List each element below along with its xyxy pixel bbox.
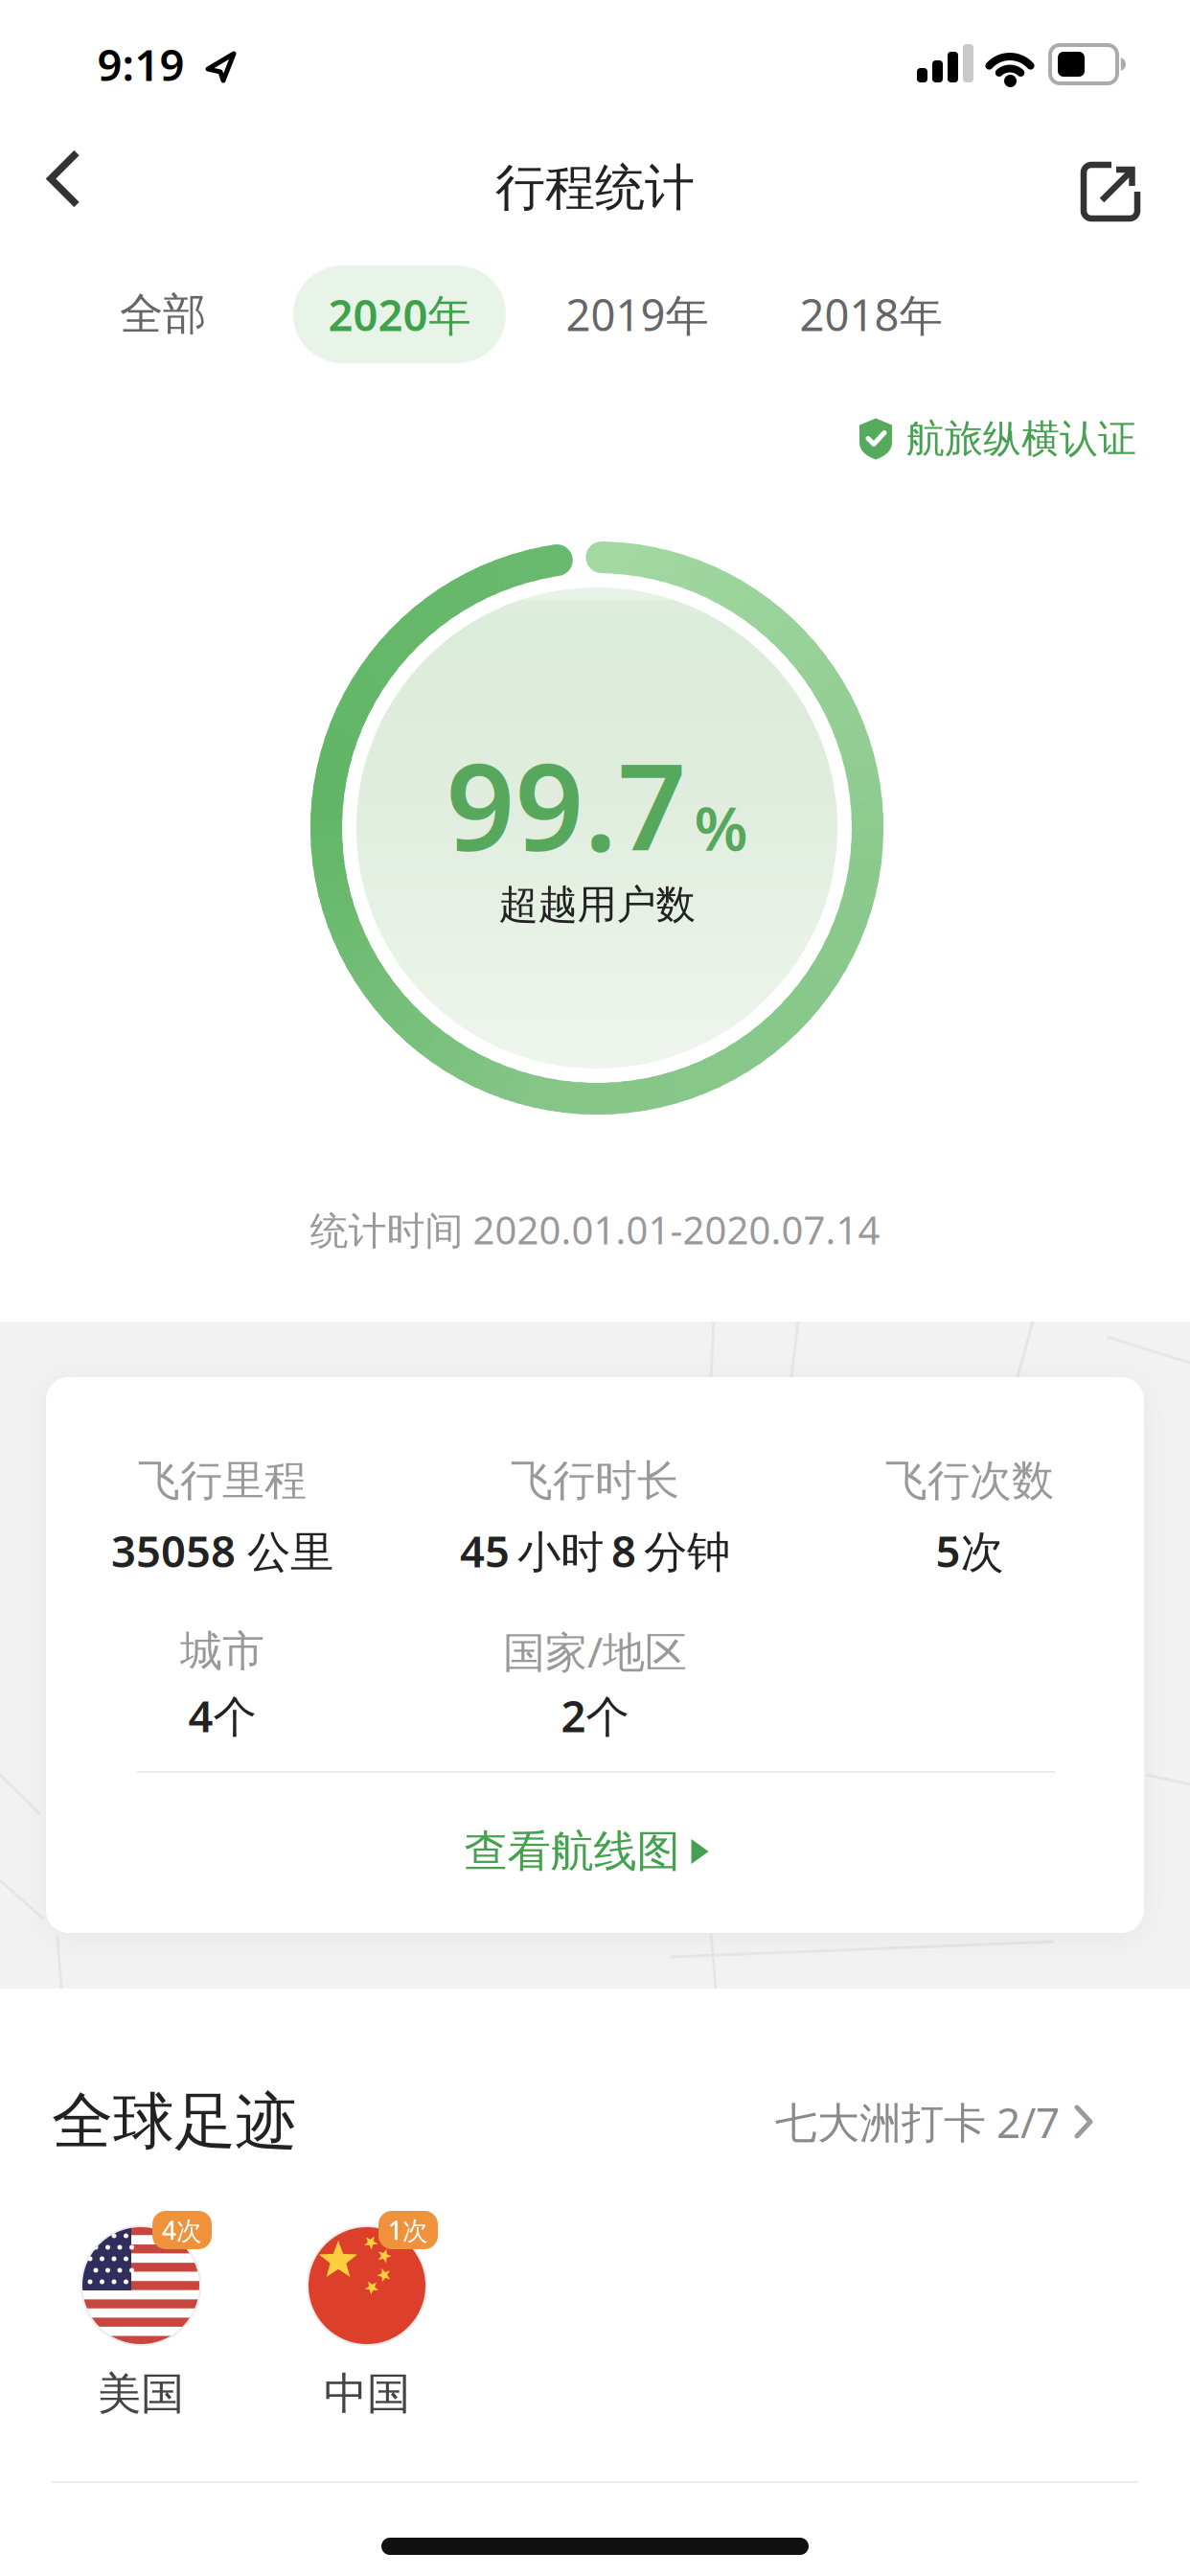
staticText: 9:19 bbox=[97, 35, 184, 93]
button[interactable]: 七大洲打卡 2/7 bbox=[500, 2083, 1094, 2160]
staticText: 查看航线图 bbox=[464, 1825, 680, 1878]
staticText: 飞行次数 bbox=[885, 1455, 1054, 1506]
staticText: 全球足迹 bbox=[52, 2084, 297, 2159]
button[interactable]: 全部 bbox=[77, 266, 249, 362]
staticText: 1次 bbox=[388, 2213, 428, 2247]
button[interactable]: 2020年 bbox=[293, 265, 506, 363]
staticText: 飞行时长 bbox=[511, 1455, 679, 1506]
staticText: 99.7 bbox=[446, 724, 687, 884]
button[interactable]: 查看航线图 bbox=[404, 1808, 768, 1895]
staticText: 统计时间 2020.01.01-2020.07.14 bbox=[310, 1204, 880, 1255]
staticText: 飞行里程 bbox=[138, 1455, 307, 1506]
button[interactable]: 分享 bbox=[1082, 158, 1143, 221]
staticText: % bbox=[694, 786, 748, 868]
staticText: 4个 bbox=[188, 1687, 256, 1744]
staticText: 七大洲打卡 2/7 bbox=[775, 2094, 1060, 2150]
staticText: 45 小时 8 分钟 bbox=[460, 1522, 730, 1579]
button[interactable]: 2018年 bbox=[751, 266, 991, 362]
button[interactable]: 4次 bbox=[66, 2196, 248, 2426]
staticText: 5次 bbox=[936, 1522, 1004, 1579]
button[interactable]: 2019年 bbox=[517, 266, 757, 362]
staticText: 2019年 bbox=[566, 285, 709, 343]
button[interactable]: 返回 bbox=[25, 143, 102, 234]
staticText: 4次 bbox=[162, 2213, 202, 2247]
staticText: 行程统计 bbox=[495, 157, 695, 218]
staticText: 2020年 bbox=[328, 285, 471, 343]
staticText: 中国 bbox=[324, 2367, 410, 2421]
staticText: 美国 bbox=[98, 2367, 184, 2421]
staticText: 35058 公里 bbox=[111, 1522, 333, 1579]
button[interactable]: 1次 bbox=[292, 2196, 474, 2426]
staticText: 航旅纵横认证 bbox=[906, 415, 1136, 462]
staticText: 全部 bbox=[120, 288, 206, 341]
staticText: 超越用户数 bbox=[499, 880, 695, 929]
staticText: 城市 bbox=[180, 1625, 264, 1677]
staticText: 2个 bbox=[561, 1687, 629, 1744]
staticText: 国家/地区 bbox=[503, 1623, 687, 1679]
staticText: 2018年 bbox=[800, 285, 942, 343]
